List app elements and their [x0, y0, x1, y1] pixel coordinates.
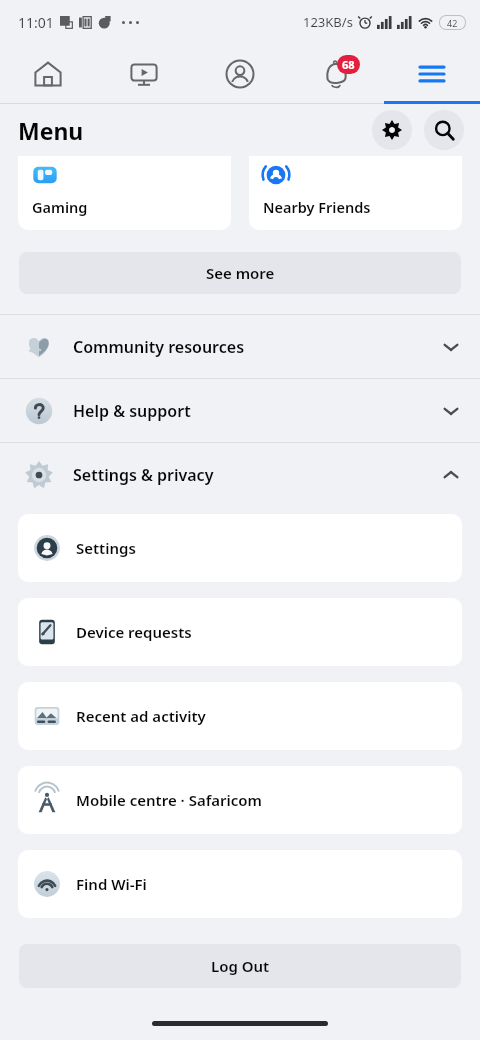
button[interactable]: Search [424, 110, 464, 150]
button[interactable]: Mobile centre · Safaricom [18, 766, 462, 834]
staticText: Nearby Friends [263, 197, 371, 217]
staticText: Find Wi-Fi [76, 874, 147, 894]
staticText: Help & support [73, 400, 191, 422]
staticText: Settings & privacy [73, 464, 214, 486]
button[interactable]: Notifications [288, 44, 384, 104]
button[interactable]: Profile [192, 44, 288, 104]
staticText: 68 [342, 57, 355, 72]
staticText: Device requests [76, 622, 192, 642]
staticText: Gaming [32, 197, 88, 217]
button[interactable]: See more [19, 252, 461, 294]
button[interactable]: Settings [372, 110, 412, 150]
button[interactable]: Help & support [0, 379, 480, 442]
button[interactable]: Find Wi-Fi [18, 850, 462, 918]
button[interactable]: Log Out [19, 944, 461, 988]
button[interactable]: Nearby Friends [249, 156, 462, 230]
button[interactable]: Settings & privacy [0, 443, 480, 506]
staticText: 11:01 [18, 13, 54, 32]
button[interactable]: Settings [18, 514, 462, 582]
button[interactable]: Video [96, 44, 192, 104]
staticText: 123KB/s [303, 13, 353, 31]
button[interactable]: Home [0, 44, 96, 104]
staticText: 42 [447, 17, 458, 29]
button[interactable]: Recent ad activity [18, 682, 462, 750]
button[interactable]: Gaming [18, 156, 231, 230]
staticText: Community resources [73, 336, 245, 358]
staticText: See more [206, 263, 275, 283]
staticText: Log Out [211, 956, 270, 976]
staticText: Mobile centre · Safaricom [76, 790, 262, 810]
button[interactable]: Menu [384, 44, 480, 104]
staticText: Menu [18, 115, 84, 146]
button[interactable]: Device requests [18, 598, 462, 666]
staticText: Recent ad activity [76, 706, 206, 726]
button[interactable]: Community resources [0, 315, 480, 378]
staticText: Settings [76, 538, 136, 558]
